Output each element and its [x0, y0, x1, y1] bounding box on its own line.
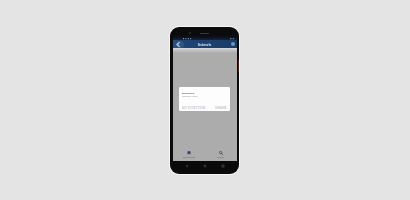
staticText: Bookmarks	[183, 156, 196, 159]
button[interactable]: GO TO SECTION	[182, 106, 206, 110]
button[interactable]: Home	[201, 162, 209, 170]
button[interactable]: Back	[183, 162, 191, 170]
button[interactable]: Bookmarks	[173, 148, 205, 161]
button[interactable]: Recents	[219, 162, 227, 170]
button[interactable]: Profile	[228, 40, 237, 48]
staticText: Reference Name	[182, 95, 198, 98]
button[interactable]: UNSAVE	[215, 106, 227, 110]
button[interactable]: Search	[205, 148, 237, 161]
button[interactable]: Back	[173, 40, 183, 48]
staticText: Bookmark	[182, 91, 195, 94]
staticText: Bookmarks	[182, 43, 227, 46]
staticText: Search	[217, 156, 225, 159]
button[interactable]: Bookmark	[179, 87, 230, 111]
